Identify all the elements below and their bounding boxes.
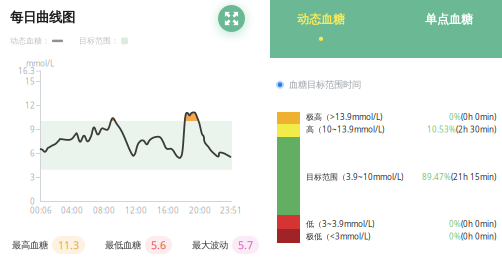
- staticText: (0h 0min): [461, 111, 496, 122]
- staticText: 极低（<3mmol/L): [306, 231, 370, 242]
- staticText: 5.7: [238, 238, 253, 252]
- staticText: 16:00: [157, 205, 179, 216]
- staticText: 0%: [449, 231, 461, 242]
- staticText: 10.53%: [427, 124, 456, 135]
- staticText: (0h 0min): [461, 218, 496, 229]
- staticText: 11.3: [58, 238, 79, 252]
- staticText: 0: [30, 196, 35, 207]
- staticText: 15: [25, 76, 35, 87]
- button[interactable]: Expand chart: [218, 5, 245, 32]
- staticText: 0%: [449, 218, 461, 229]
- staticText: (21h 15min): [451, 171, 496, 182]
- staticText: 低（3~3.9mmol/L): [306, 218, 374, 229]
- staticText: 5.6: [151, 238, 166, 252]
- staticText: 9: [30, 124, 35, 135]
- staticText: 每日曲线图: [10, 9, 75, 25]
- button[interactable]: 单点血糖: [425, 12, 473, 41]
- staticText: 16.3: [18, 66, 35, 76]
- staticText: 12: [25, 100, 35, 111]
- staticText: 6: [30, 148, 35, 159]
- button[interactable]: 动态血糖: [297, 12, 345, 41]
- staticText: 23:51: [220, 205, 242, 216]
- staticText: (2h 30min): [456, 124, 496, 135]
- staticText: mmol/L: [26, 58, 54, 69]
- staticText: 00:06: [30, 205, 52, 216]
- staticText: 高（10~13.9mmol/L): [306, 124, 384, 135]
- staticText: 最低血糖: [105, 239, 141, 251]
- staticText: (0h 0min): [461, 231, 496, 242]
- staticText: 目标范围：: [79, 36, 119, 46]
- staticText: 单点血糖: [425, 12, 473, 27]
- staticText: 极高（>13.9mmol/L): [306, 111, 382, 122]
- staticText: 20:00: [189, 205, 211, 216]
- staticText: 最大波动: [192, 239, 228, 251]
- staticText: 动态血糖：: [10, 36, 50, 46]
- staticText: 04:00: [61, 205, 83, 216]
- staticText: 最高血糖: [12, 239, 48, 251]
- staticText: 动态血糖: [297, 12, 345, 27]
- staticText: 3: [30, 172, 35, 183]
- staticText: 0%: [449, 111, 461, 122]
- staticText: 08:00: [93, 205, 115, 216]
- staticText: 目标范围（3.9~10mmol/L): [306, 171, 403, 182]
- staticText: 12:00: [125, 205, 147, 216]
- staticText: 89.47%: [422, 171, 451, 182]
- staticText: 血糖目标范围时间: [289, 79, 361, 90]
